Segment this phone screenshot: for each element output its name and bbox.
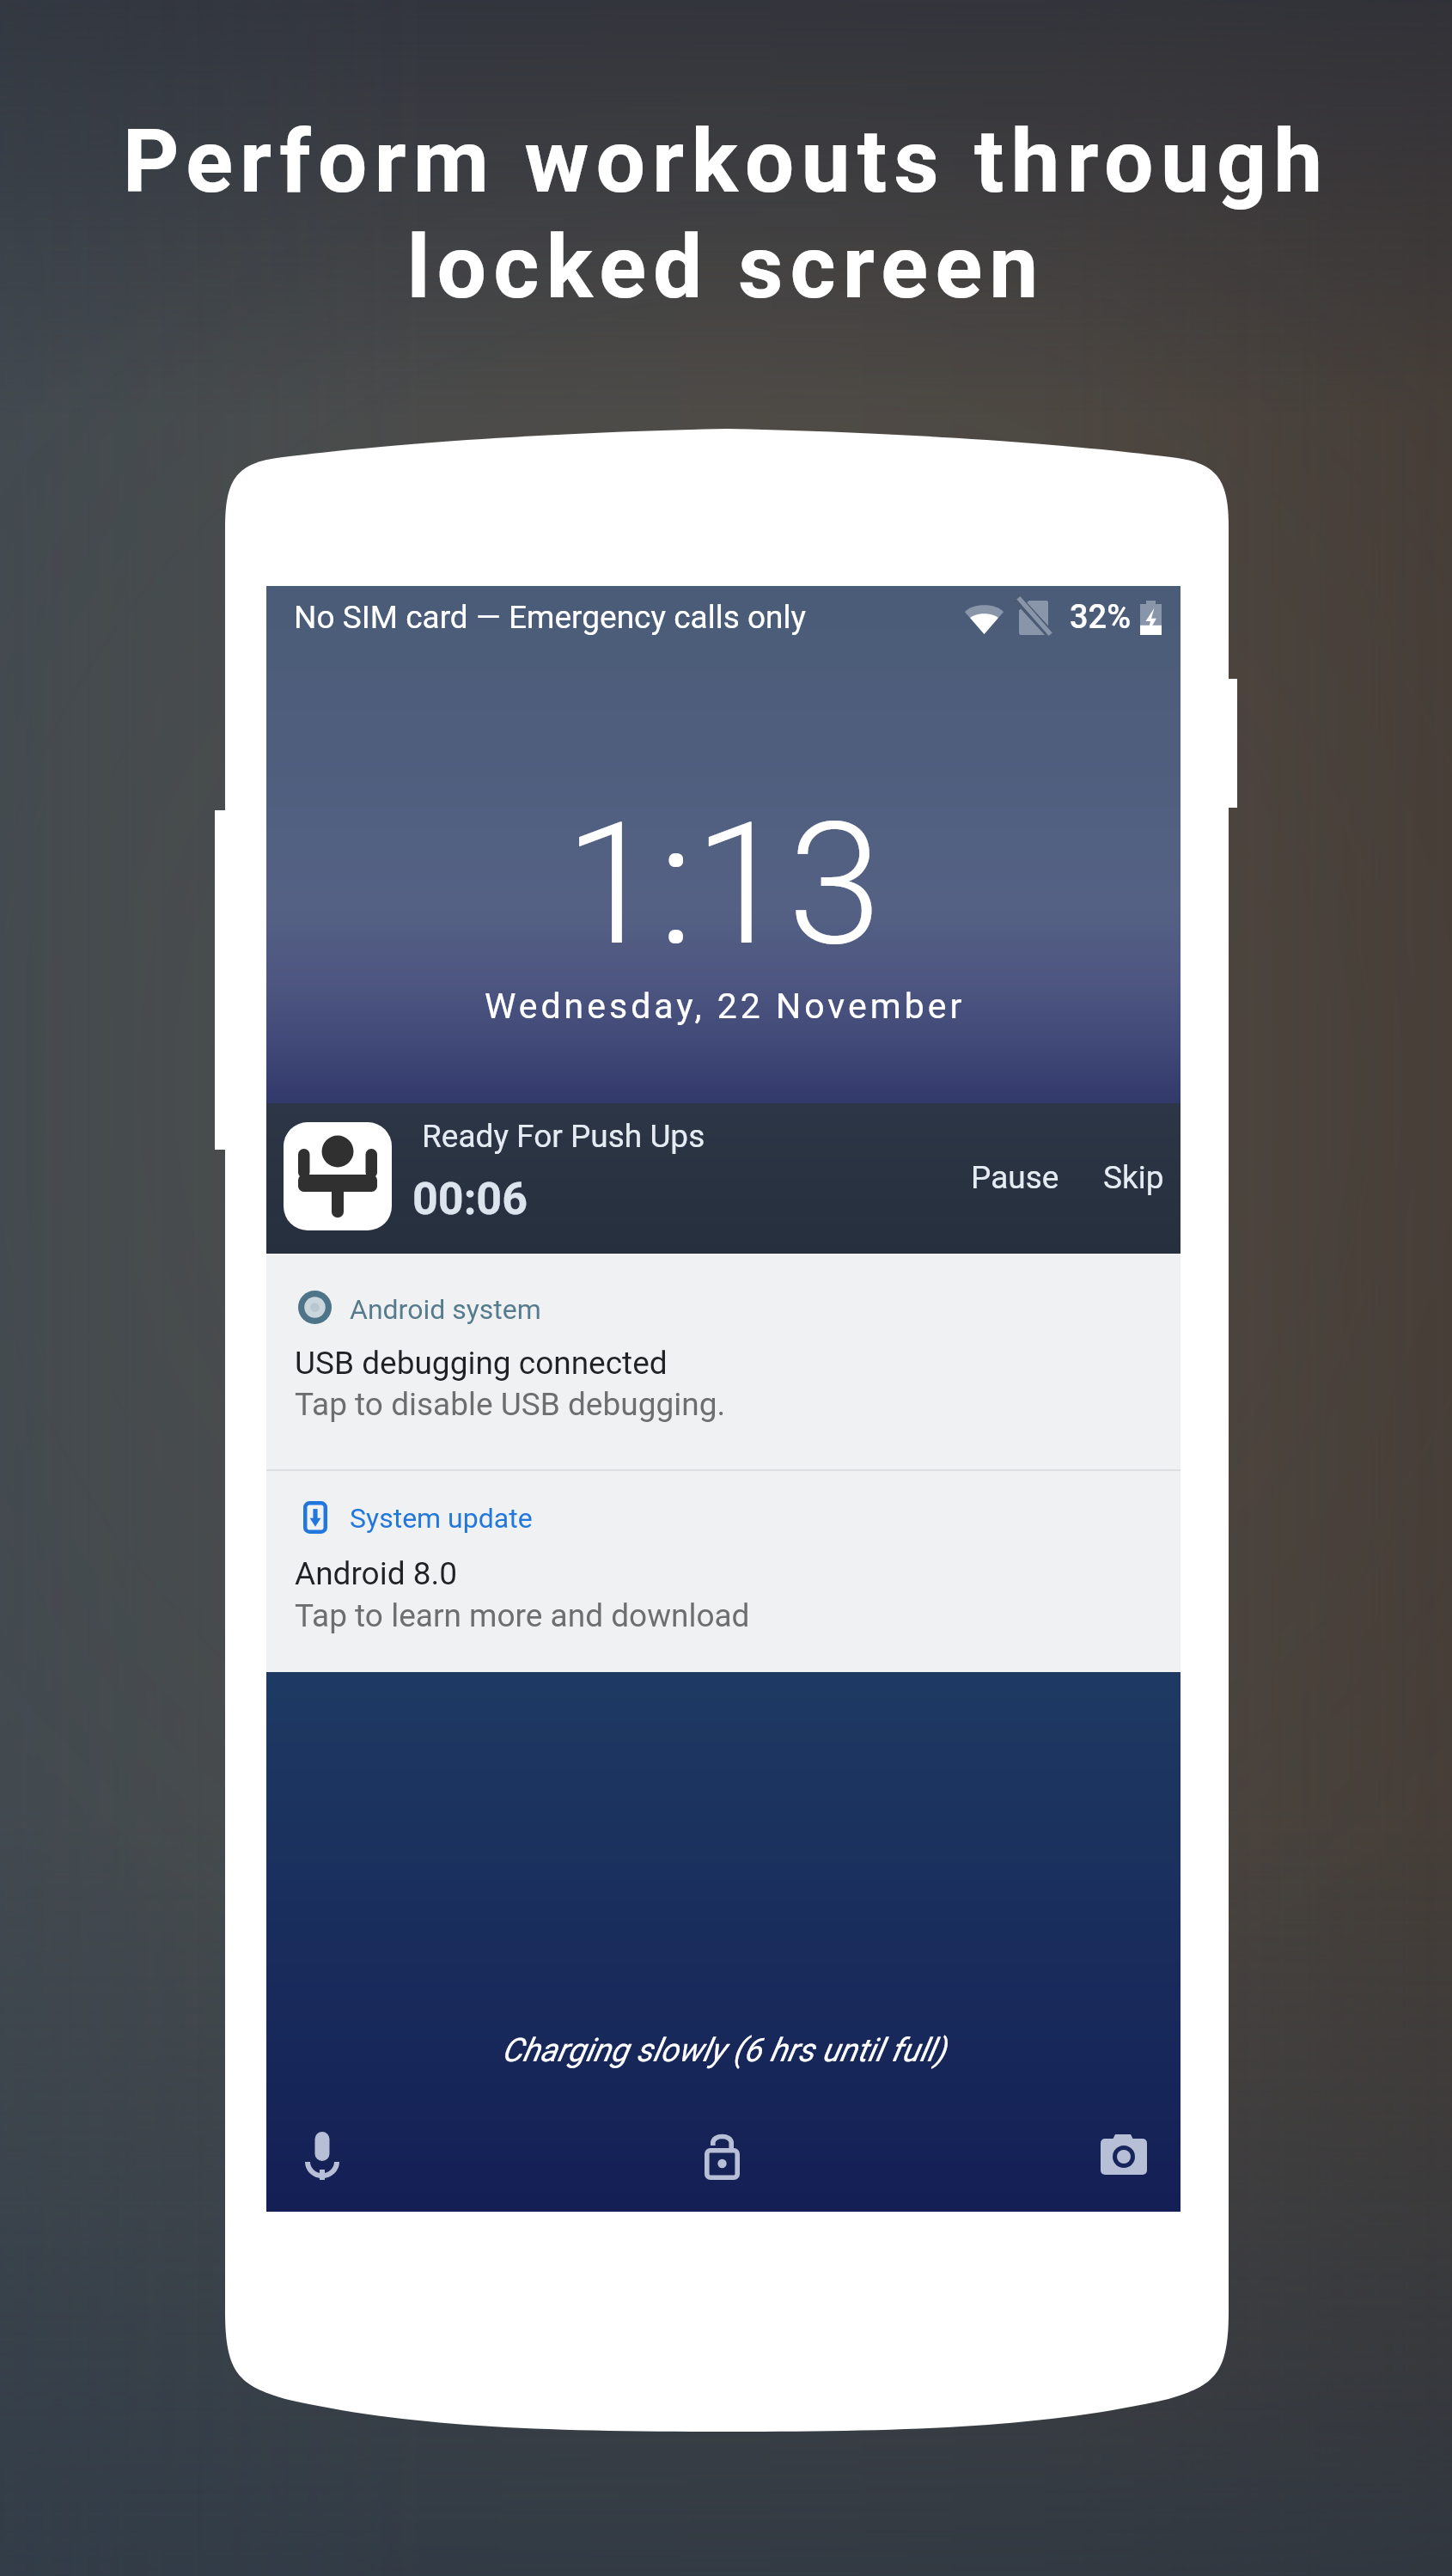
staticText: Android 8.0 bbox=[295, 1555, 458, 1592]
button[interactable]: Camera bbox=[1086, 2116, 1162, 2192]
staticText: Tap to disable USB debugging. bbox=[295, 1386, 726, 1423]
staticText: 1:13 bbox=[564, 785, 882, 984]
staticText: Tap to learn more and download bbox=[295, 1597, 750, 1634]
staticText: Skip bbox=[1103, 1159, 1164, 1196]
button[interactable]: Voice assistant bbox=[284, 2118, 360, 2194]
staticText: Perform workouts through locked screen bbox=[0, 110, 1452, 319]
button[interactable]: Android system bbox=[266, 1254, 1181, 1469]
button[interactable]: Unlock bbox=[684, 2118, 760, 2194]
button[interactable]: System update bbox=[266, 1471, 1181, 1672]
button[interactable]: Pause bbox=[955, 1145, 1075, 1210]
staticText: Ready For Push Ups bbox=[422, 1118, 705, 1155]
button[interactable]: Ready For Push Ups bbox=[266, 1103, 1181, 1254]
staticText: System update bbox=[350, 1502, 533, 1535]
staticText: Wednesday, 22 November bbox=[485, 986, 966, 1027]
staticText: 32% bbox=[1070, 598, 1132, 637]
staticText: USB debugging connected bbox=[295, 1345, 668, 1382]
staticText: Charging slowly (6 hrs until full) bbox=[502, 2031, 946, 2070]
staticText: Android system bbox=[350, 1293, 541, 1326]
button[interactable]: Skip bbox=[1088, 1145, 1180, 1210]
staticText: 00:06 bbox=[412, 1173, 528, 1225]
staticText: Pause bbox=[971, 1159, 1059, 1196]
staticText: No SIM card — Emergency calls only bbox=[294, 599, 806, 636]
